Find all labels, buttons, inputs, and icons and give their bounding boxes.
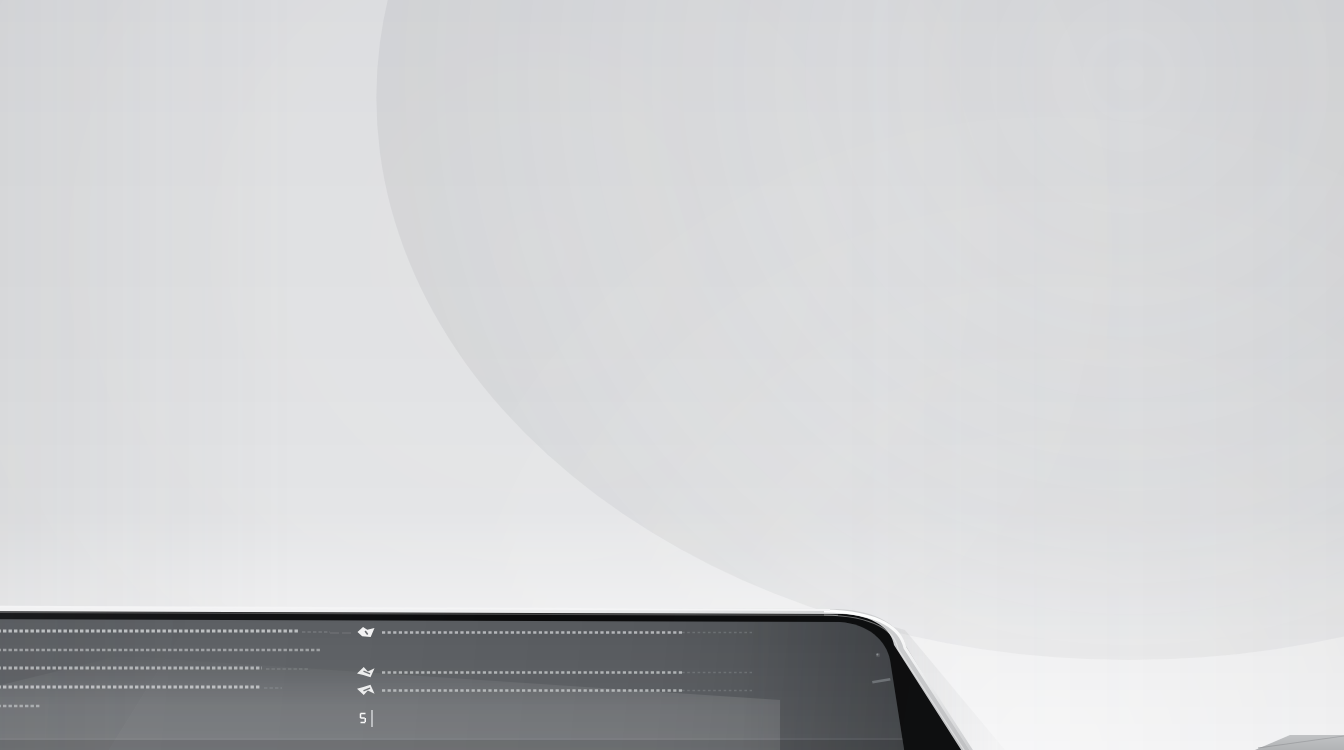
button[interactable]: Tablet device photo on light backdrop <box>0 0 1344 750</box>
